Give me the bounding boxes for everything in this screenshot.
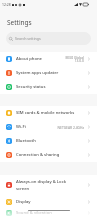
button[interactable]: Connection & sharing — [0, 148, 97, 162]
button[interactable]: About phone — [0, 52, 97, 66]
staticText: MIUI Global 13.0.0 — [65, 55, 84, 63]
button[interactable]: Sound & vibration — [0, 209, 97, 216]
button[interactable]: Bluetooth — [0, 134, 97, 148]
staticText: Connection & sharing — [16, 152, 88, 158]
button[interactable]: System apps updater — [0, 66, 97, 80]
staticText: Wi-Fi — [16, 124, 57, 130]
staticText: 12:28 — [2, 2, 11, 7]
staticText: Sound & vibration — [16, 210, 88, 216]
staticText: SIM cards & mobile networks — [16, 110, 88, 116]
staticText: Security status — [16, 84, 88, 90]
staticText: System apps updater — [16, 70, 88, 76]
button[interactable]: Security status — [0, 80, 97, 94]
button[interactable]: Display — [0, 195, 97, 209]
staticText: Display — [16, 199, 88, 205]
staticText: Settings — [7, 18, 32, 27]
staticText: Always-on display & Lock screen — [16, 179, 88, 191]
button[interactable]: Search settings — [6, 32, 91, 45]
button[interactable]: Always-on display & Lock screen — [0, 175, 97, 195]
button[interactable]: SIM cards & mobile networks — [0, 106, 97, 120]
staticText: NETGEAR 2.4GHz — [57, 125, 84, 129]
staticText: Search settings — [15, 36, 41, 41]
staticText: Bluetooth — [16, 138, 88, 144]
staticText: About phone — [16, 56, 65, 62]
button[interactable]: Wi-Fi — [0, 120, 97, 134]
